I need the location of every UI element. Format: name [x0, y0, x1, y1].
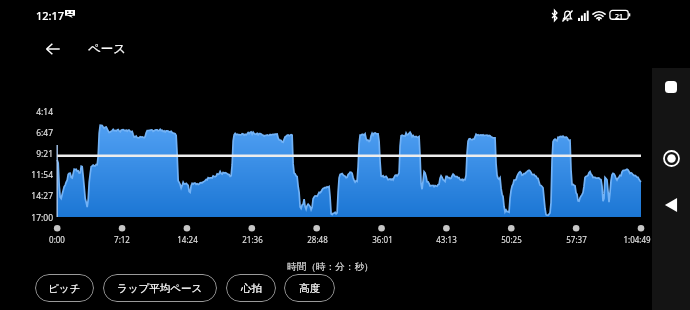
- staticText: 36:01: [372, 234, 393, 245]
- button[interactable]: 高度: [284, 274, 335, 302]
- staticText: 高度: [299, 282, 320, 295]
- staticText: 7:12: [114, 234, 130, 245]
- staticText: 心拍: [241, 282, 262, 295]
- staticText: 17:00: [31, 212, 53, 224]
- button[interactable]: Back: [34, 30, 71, 67]
- button[interactable]: Home: [656, 143, 686, 173]
- staticText: ピッチ: [48, 282, 81, 295]
- staticText: 9:21: [36, 148, 53, 160]
- button[interactable]: 心拍: [226, 274, 276, 302]
- staticText: ラップ平均ペース: [117, 282, 203, 295]
- staticText: 43:13: [436, 234, 457, 245]
- staticText: ペース: [88, 41, 127, 57]
- staticText: 時間（時：分：秒）: [287, 261, 374, 273]
- staticText: 14:27: [31, 190, 53, 202]
- staticText: 6:47: [36, 127, 53, 139]
- staticText: 57:37: [566, 234, 587, 245]
- staticText: 4:14: [36, 106, 53, 118]
- staticText: 12:17: [36, 8, 65, 23]
- staticText: 21:36: [242, 234, 263, 245]
- button[interactable]: Back: [656, 190, 686, 220]
- button[interactable]: ピッチ: [35, 274, 94, 302]
- staticText: 14:24: [177, 234, 198, 245]
- staticText: 1:04:49: [623, 234, 651, 245]
- button[interactable]: Recent apps: [656, 72, 686, 102]
- staticText: 28:48: [307, 234, 328, 245]
- staticText: 0:00: [49, 234, 65, 245]
- staticText: 21: [615, 12, 624, 22]
- staticText: 50:25: [501, 234, 522, 245]
- button[interactable]: ラップ平均ペース: [103, 274, 217, 302]
- staticText: 11:54: [31, 169, 53, 181]
